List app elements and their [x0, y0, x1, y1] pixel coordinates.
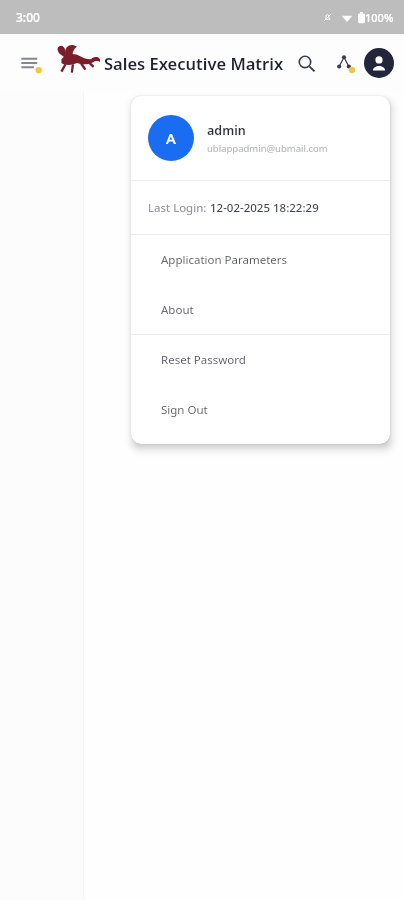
button[interactable]: About — [131, 285, 390, 334]
button[interactable]: Sign Out — [131, 385, 390, 434]
staticText: Reset Password — [161, 352, 246, 368]
staticText: 3:00 — [16, 9, 40, 25]
staticText: 12-02-2025 18:22:29 — [210, 200, 319, 216]
button[interactable]: Account — [364, 48, 394, 78]
button[interactable]: Application Parameters — [131, 235, 390, 285]
button[interactable]: Open navigation menu — [12, 45, 48, 81]
button[interactable]: A — [131, 96, 390, 180]
staticText: admin — [207, 122, 246, 139]
staticText: 100% — [365, 10, 394, 25]
staticText: ublappadmin@ubmail.com — [207, 142, 328, 155]
staticText: Sales Executive Matrix — [104, 52, 284, 74]
button[interactable]: Share — [327, 46, 361, 80]
staticText: Application Parameters — [161, 252, 288, 268]
staticText: About — [161, 302, 194, 318]
staticText: Last Login: — [148, 200, 210, 216]
button[interactable]: Last Login: — [131, 181, 390, 234]
staticText: A — [166, 128, 176, 148]
button[interactable]: Search — [289, 46, 323, 80]
button[interactable]: Reset Password — [131, 335, 390, 385]
staticText: Sign Out — [161, 402, 208, 418]
